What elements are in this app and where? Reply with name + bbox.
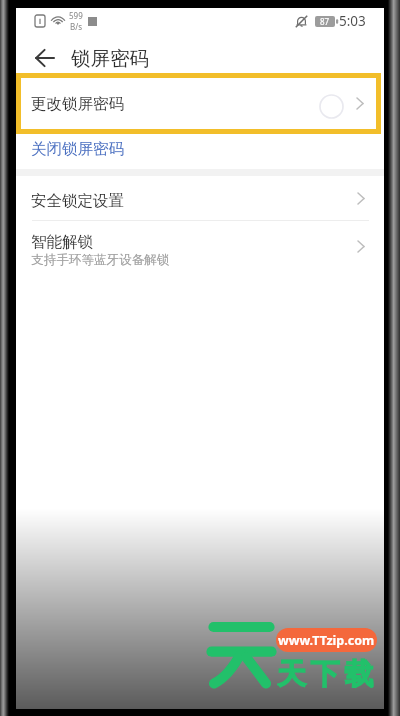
staticText: 关闭锁屏密码 [31, 139, 124, 159]
staticText: 599 [69, 10, 83, 21]
button[interactable]: 安全锁定设置 [16, 176, 384, 221]
button[interactable]: 智能解锁 [16, 221, 384, 273]
button[interactable]: Back [29, 42, 61, 74]
staticText: 安全锁定设置 [31, 191, 124, 211]
staticText: 支持手环等蓝牙设备解锁 [31, 252, 170, 268]
staticText: 锁屏密码 [71, 46, 149, 71]
button[interactable]: 关闭锁屏密码 [16, 133, 384, 169]
staticText: 更改锁屏密码 [31, 94, 124, 114]
staticText: www.TTzip.com [278, 632, 375, 649]
staticText: 天下载 [277, 656, 379, 692]
staticText: B/s [70, 21, 83, 32]
staticText: 5:03 [339, 12, 366, 30]
button[interactable]: 更改锁屏密码 [21, 78, 376, 129]
staticText: 智能解锁 [31, 232, 93, 252]
staticText: 87 [320, 16, 330, 27]
